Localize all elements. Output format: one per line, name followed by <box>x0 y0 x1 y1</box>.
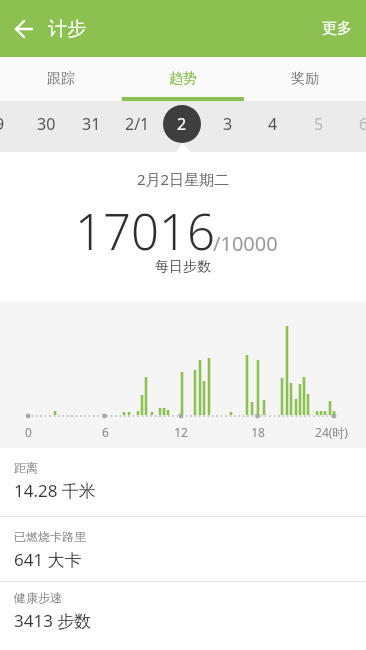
staticText: 6 <box>359 113 366 135</box>
button[interactable]: 2 <box>159 101 205 152</box>
button[interactable]: 已燃烧卡路里 <box>0 517 366 581</box>
staticText: 距离 <box>14 460 38 475</box>
staticText: 14.28 千米 <box>14 479 96 502</box>
staticText: 31 <box>82 113 101 135</box>
button[interactable]: 5 <box>296 101 342 152</box>
staticText: 更多 <box>322 19 352 38</box>
staticText: 2月2日星期二 <box>137 169 230 189</box>
staticText: 17016 <box>75 198 215 265</box>
staticText: 已燃烧卡路里 <box>14 529 86 544</box>
button[interactable]: 4 <box>250 101 296 152</box>
staticText: 3 <box>223 113 233 135</box>
staticText: 奖励 <box>291 70 319 88</box>
staticText: 每日步数 <box>155 258 211 276</box>
staticText: 12 <box>174 424 188 440</box>
button[interactable] <box>0 0 48 57</box>
staticText: 趋势 <box>169 70 197 88</box>
button[interactable]: 更多 <box>308 0 366 57</box>
staticText: 641 大卡 <box>14 548 82 571</box>
staticText: 3413 步数 <box>14 609 92 632</box>
button[interactable]: 31 <box>68 101 114 152</box>
staticText: 24(时) <box>315 424 348 440</box>
button[interactable]: 9 <box>0 101 23 152</box>
staticText: 健康步速 <box>14 590 62 605</box>
staticText: 4 <box>268 113 278 135</box>
staticText: 跟踪 <box>47 70 75 88</box>
button[interactable]: 3 <box>205 101 251 152</box>
staticText: /10000 <box>213 230 278 257</box>
staticText: 6 <box>102 424 109 440</box>
button[interactable]: 健康步速 <box>0 582 366 642</box>
staticText: 计步 <box>48 17 86 41</box>
staticText: 9 <box>0 113 5 135</box>
button[interactable]: 2/1 <box>114 101 160 152</box>
button[interactable]: 30 <box>23 101 69 152</box>
button[interactable]: 6 <box>341 101 366 152</box>
button[interactable]: 距离 <box>0 448 366 516</box>
staticText: 0 <box>25 424 32 440</box>
button[interactable]: 奖励 <box>244 57 366 101</box>
button[interactable]: 跟踪 <box>0 57 122 101</box>
button[interactable]: 趋势 <box>122 57 244 101</box>
staticText: 2/1 <box>125 113 150 135</box>
staticText: 30 <box>37 113 56 135</box>
staticText: 2 <box>177 113 187 135</box>
staticText: 5 <box>314 113 324 135</box>
staticText: 18 <box>251 424 265 440</box>
